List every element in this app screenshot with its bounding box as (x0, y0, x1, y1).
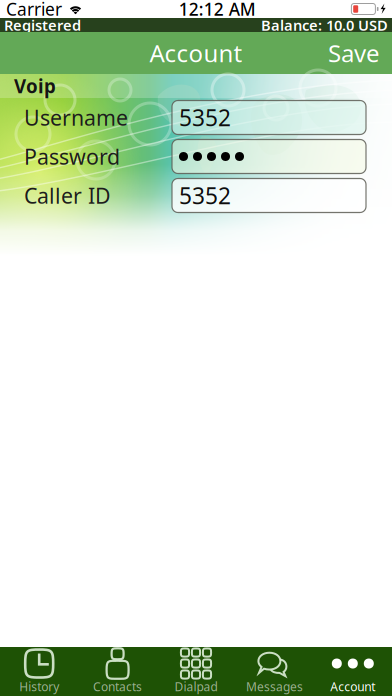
staticText: Dialpad (174, 678, 217, 694)
staticText: Messages (246, 678, 303, 694)
button[interactable]: History (0, 647, 78, 696)
staticText: Contacts (93, 678, 142, 694)
button[interactable]: Account (314, 647, 392, 696)
staticText: Account (330, 678, 375, 694)
staticText: Voip (14, 74, 56, 98)
staticText: Save (328, 37, 380, 69)
staticText: 5352 (179, 102, 231, 132)
staticText: Password (24, 142, 120, 171)
staticText: 5352 (179, 180, 231, 210)
staticText: Carrier (6, 0, 62, 20)
staticText: Caller ID (24, 181, 111, 210)
button[interactable]: Messages (235, 647, 314, 696)
button[interactable]: Dialpad (157, 647, 235, 696)
button[interactable]: Contacts (78, 647, 157, 696)
staticText: Account (149, 37, 242, 69)
button[interactable]: Save (314, 32, 392, 74)
staticText: History (19, 678, 59, 694)
staticText: Username (24, 103, 128, 132)
staticText: 12:12 AM (179, 0, 256, 20)
staticText: Balance: 10.0 USD (261, 15, 388, 35)
staticText: Registered (4, 15, 81, 35)
